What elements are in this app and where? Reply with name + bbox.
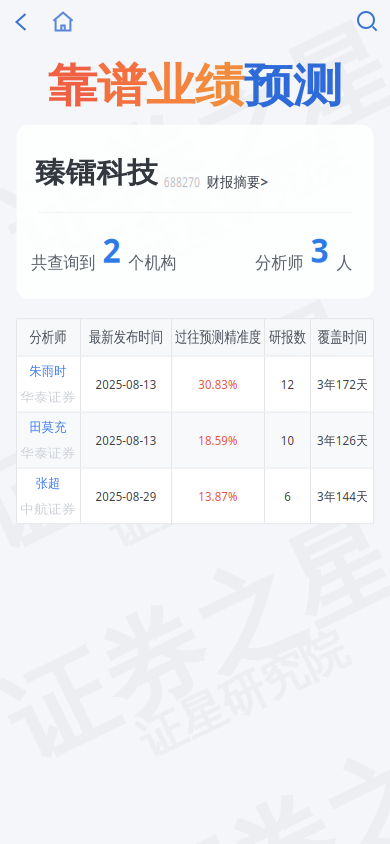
staticText: 华泰证券 — [10, 386, 86, 409]
staticText: 12 — [276, 372, 298, 397]
staticText: 2 — [98, 220, 124, 280]
staticText: 证券之星 — [0, 86, 390, 214]
button[interactable]: 朱雨时 — [16, 357, 374, 412]
staticText: 3年144天 — [301, 484, 383, 509]
staticText: 分析师 — [245, 249, 314, 277]
staticText: 中航证券 — [10, 498, 86, 521]
staticText: 过往预测精准度 — [162, 327, 274, 347]
staticText: 10 — [276, 428, 298, 453]
staticText: 证券之星 — [0, 366, 376, 494]
staticText: 证星研究院 — [130, 177, 355, 233]
staticText: 分析师 — [24, 327, 72, 347]
staticText: 证券之星 — [0, 576, 390, 704]
staticText: 18.59% — [185, 428, 250, 453]
staticText: 13.87% — [185, 484, 250, 509]
staticText: 个机构 — [118, 249, 187, 277]
staticText: 2025-08-13 — [76, 428, 176, 453]
staticText: 最新发布时间 — [78, 327, 174, 347]
staticText: 3 — [306, 220, 332, 280]
button[interactable]: 张超 — [16, 469, 374, 524]
staticText: 财报摘要> — [194, 169, 281, 194]
staticText: 张超 — [29, 472, 67, 495]
staticText: 共查询到 — [17, 249, 109, 277]
staticText: 688270 — [149, 169, 215, 194]
staticText: 臻镭科技 — [26, 151, 166, 194]
staticText: 田莫充 — [19, 416, 76, 439]
staticText: 华泰证券 — [10, 442, 86, 465]
staticText: 预 — [240, 58, 285, 114]
staticText: 朱雨时 — [19, 360, 76, 383]
staticText: 绩 — [195, 58, 240, 114]
staticText: 覆盖时间 — [310, 327, 374, 347]
staticText: 3年172天 — [301, 372, 383, 397]
button[interactable]: 田莫充 — [16, 413, 374, 468]
staticText: 研报数 — [263, 327, 311, 347]
button[interactable]: Back — [0, 0, 42, 44]
staticText: 靠 — [60, 58, 105, 114]
button[interactable]: 财报摘要> — [202, 170, 272, 194]
staticText: 6 — [282, 484, 293, 509]
staticText: 谱 — [105, 58, 150, 114]
staticText: 2025-08-13 — [76, 372, 176, 397]
staticText: 2025-08-29 — [76, 484, 176, 509]
staticText: 业 — [150, 58, 195, 114]
button[interactable]: Home — [42, 0, 84, 44]
staticText: 证星研究院 — [130, 667, 355, 723]
staticText: 证券之星 — [122, 766, 390, 844]
button[interactable]: Search — [346, 0, 390, 44]
staticText: 证星研究院 — [99, 457, 324, 513]
staticText: 人 — [333, 249, 356, 277]
staticText: 3年126天 — [301, 428, 383, 453]
staticText: 测 — [285, 58, 330, 114]
staticText: 30.83% — [185, 372, 250, 397]
